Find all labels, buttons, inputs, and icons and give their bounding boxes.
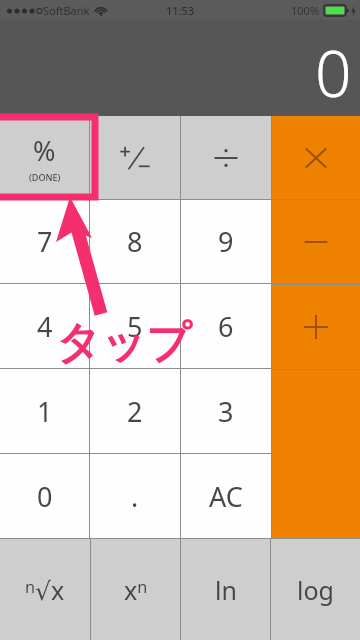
staticText: 3	[218, 393, 234, 430]
staticText: 100%	[291, 3, 320, 18]
button[interactable]: log	[271, 539, 360, 640]
button[interactable]: %	[0, 116, 89, 199]
staticText: ⁿ√x	[25, 573, 65, 607]
staticText: 4	[37, 308, 53, 345]
staticText: 0	[315, 29, 352, 116]
button[interactable]: xⁿ	[91, 539, 180, 640]
button[interactable]: 4	[0, 284, 89, 368]
staticText: .	[131, 478, 139, 515]
staticText: SoftBank	[43, 3, 90, 18]
button[interactable]: Plus minus	[90, 116, 180, 199]
button[interactable]: 7	[0, 200, 89, 283]
button[interactable]: 9	[181, 200, 271, 283]
staticText: xⁿ	[124, 573, 148, 607]
button[interactable]: ln	[181, 539, 270, 640]
staticText: 9	[218, 223, 234, 260]
button[interactable]: 1	[0, 369, 89, 453]
staticText: %	[33, 132, 56, 169]
staticText: 5	[127, 308, 143, 345]
staticText: 8	[127, 223, 143, 260]
button[interactable]: 5	[90, 284, 180, 368]
button[interactable]: ⁿ√x	[0, 539, 90, 640]
staticText: log	[297, 573, 334, 607]
button[interactable]: 8	[90, 200, 180, 283]
button[interactable]: .	[90, 454, 180, 538]
staticText: 6	[218, 308, 234, 345]
staticText: 0	[37, 478, 53, 515]
staticText: AC	[209, 478, 243, 515]
staticText: 7	[37, 223, 53, 260]
staticText: タップ	[56, 316, 192, 371]
staticText: ln	[215, 573, 237, 607]
staticText: 11:53	[166, 3, 195, 18]
button[interactable]: Multiply	[272, 116, 360, 199]
button[interactable]: AC	[181, 454, 271, 538]
staticText: 2	[127, 393, 143, 430]
staticText: 1	[37, 393, 53, 430]
button[interactable]: Divide	[181, 116, 271, 199]
button[interactable]: Add	[272, 285, 360, 369]
button[interactable]: 0	[0, 454, 89, 538]
button[interactable]: 6	[181, 284, 271, 368]
staticText: (DONE)	[29, 171, 61, 183]
button[interactable]: 2	[90, 369, 180, 453]
button[interactable]: 3	[181, 369, 271, 453]
button[interactable]: Subtract	[272, 200, 360, 284]
